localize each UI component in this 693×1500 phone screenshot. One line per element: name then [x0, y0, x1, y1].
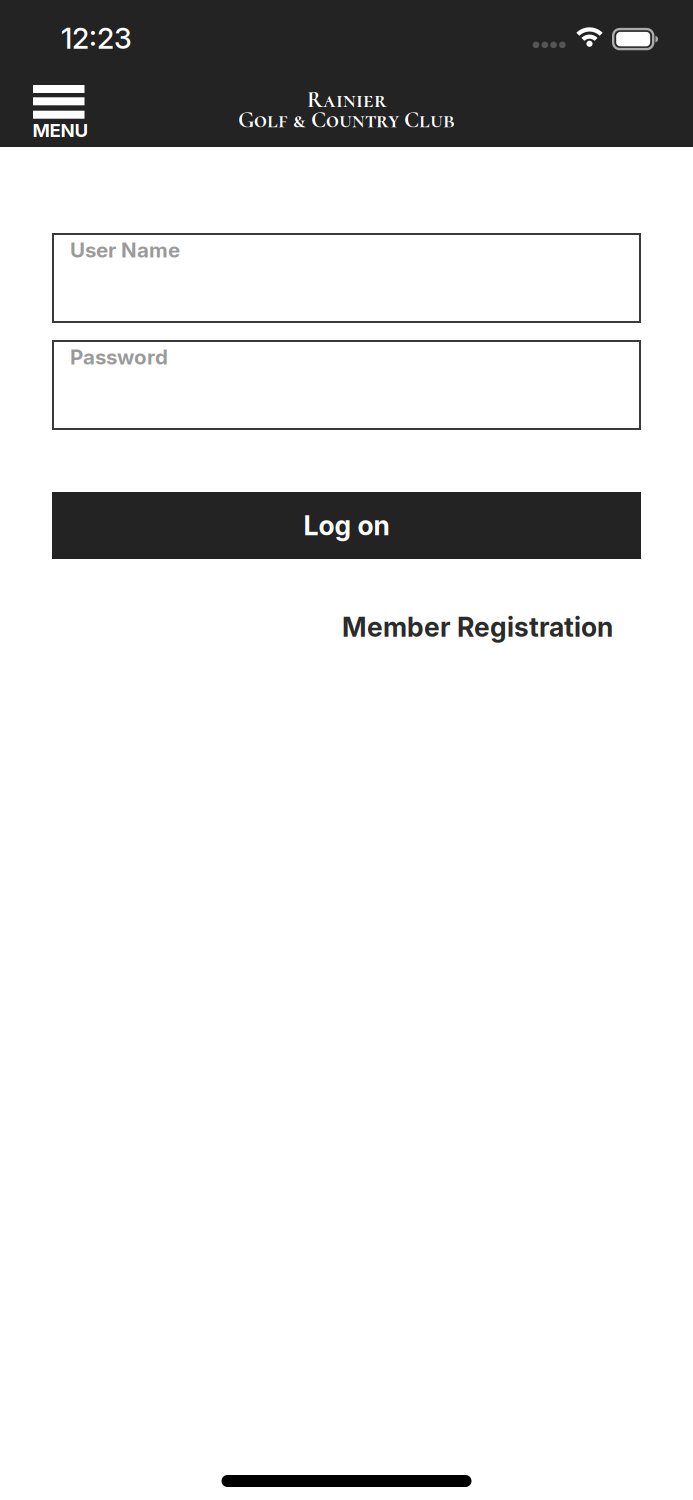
button[interactable]: Log on [52, 492, 641, 559]
staticText: Member Registration [342, 611, 613, 643]
staticText: Golf & Country Club [238, 106, 455, 134]
staticText: 12:23 [61, 21, 132, 56]
staticText: User Name [70, 237, 180, 262]
button[interactable]: User Name [52, 233, 641, 323]
button[interactable]: Menu [33, 85, 89, 138]
button[interactable]: Password [52, 340, 641, 430]
staticText: MENU [32, 119, 88, 141]
staticText: Rainier [307, 86, 386, 113]
staticText: Password [70, 344, 168, 369]
staticText: Log on [303, 509, 389, 542]
button[interactable]: Member Registration [342, 611, 613, 643]
